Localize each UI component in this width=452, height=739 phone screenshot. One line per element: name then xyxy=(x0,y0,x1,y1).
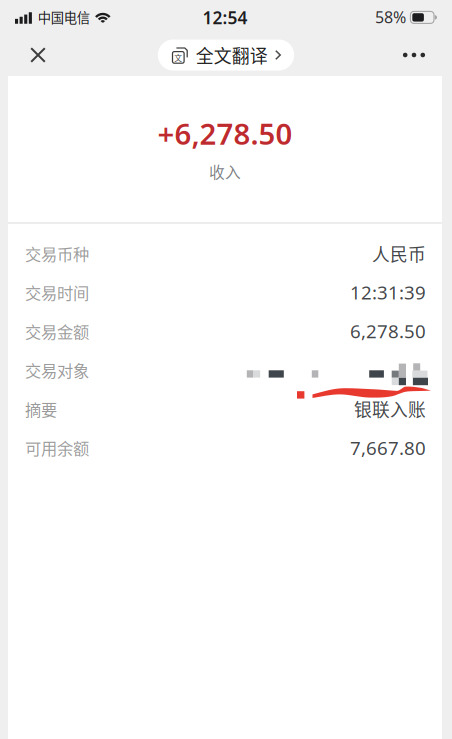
staticText: 人民币 xyxy=(372,241,426,266)
button[interactable]: More xyxy=(392,34,436,76)
staticText: 交易对象 xyxy=(25,358,89,382)
staticText: 交易金额 xyxy=(25,319,89,343)
staticText: 收入 xyxy=(209,160,241,183)
staticText: 12:31:39 xyxy=(350,280,426,305)
staticText: 可用余额 xyxy=(25,436,89,459)
staticText: 7,667.80 xyxy=(350,435,426,460)
staticText: +6,278.50 xyxy=(157,114,292,153)
button[interactable]: Close xyxy=(16,34,60,76)
staticText: 全文翻译 xyxy=(196,42,268,68)
staticText: 交易时间 xyxy=(25,280,89,304)
staticText: 58% xyxy=(375,6,406,28)
staticText: 文 xyxy=(174,52,182,63)
staticText: 12:54 xyxy=(202,6,247,29)
staticText: 交易币种 xyxy=(25,242,89,265)
staticText: 银联入账 xyxy=(354,396,426,422)
staticText: 中国电信 xyxy=(38,7,90,27)
button[interactable]: 文 xyxy=(158,39,294,70)
staticText: 6,278.50 xyxy=(350,319,426,343)
staticText: 摘要 xyxy=(25,397,57,421)
